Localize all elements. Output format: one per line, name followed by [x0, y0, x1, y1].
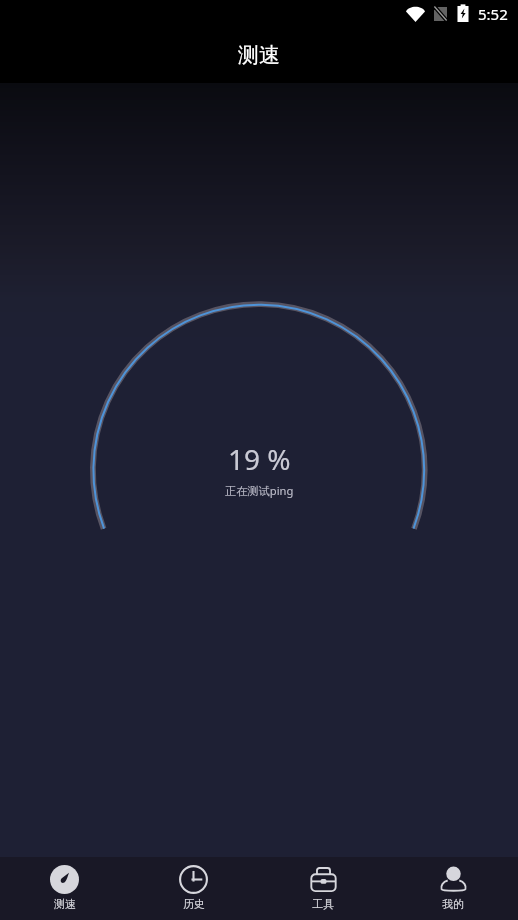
button[interactable]: 工具: [258, 857, 388, 920]
button[interactable]: 历史: [129, 857, 258, 920]
staticText: 正在测试ping: [225, 483, 294, 498]
staticText: 工具: [312, 897, 334, 911]
staticText: 测速: [54, 897, 76, 911]
staticText: 测速: [238, 42, 280, 68]
other: No mobile signal: [434, 6, 447, 21]
other: Battery charging: [457, 4, 469, 22]
staticText: 5:52: [478, 4, 508, 24]
other: Wi-Fi connected: [406, 5, 425, 22]
staticText: 我的: [442, 897, 464, 911]
button[interactable]: 19 %: [211, 438, 308, 500]
button[interactable]: 我的: [388, 857, 518, 920]
button[interactable]: 测速: [0, 857, 129, 920]
staticText: 历史: [183, 897, 205, 911]
staticText: 19 %: [228, 440, 291, 478]
